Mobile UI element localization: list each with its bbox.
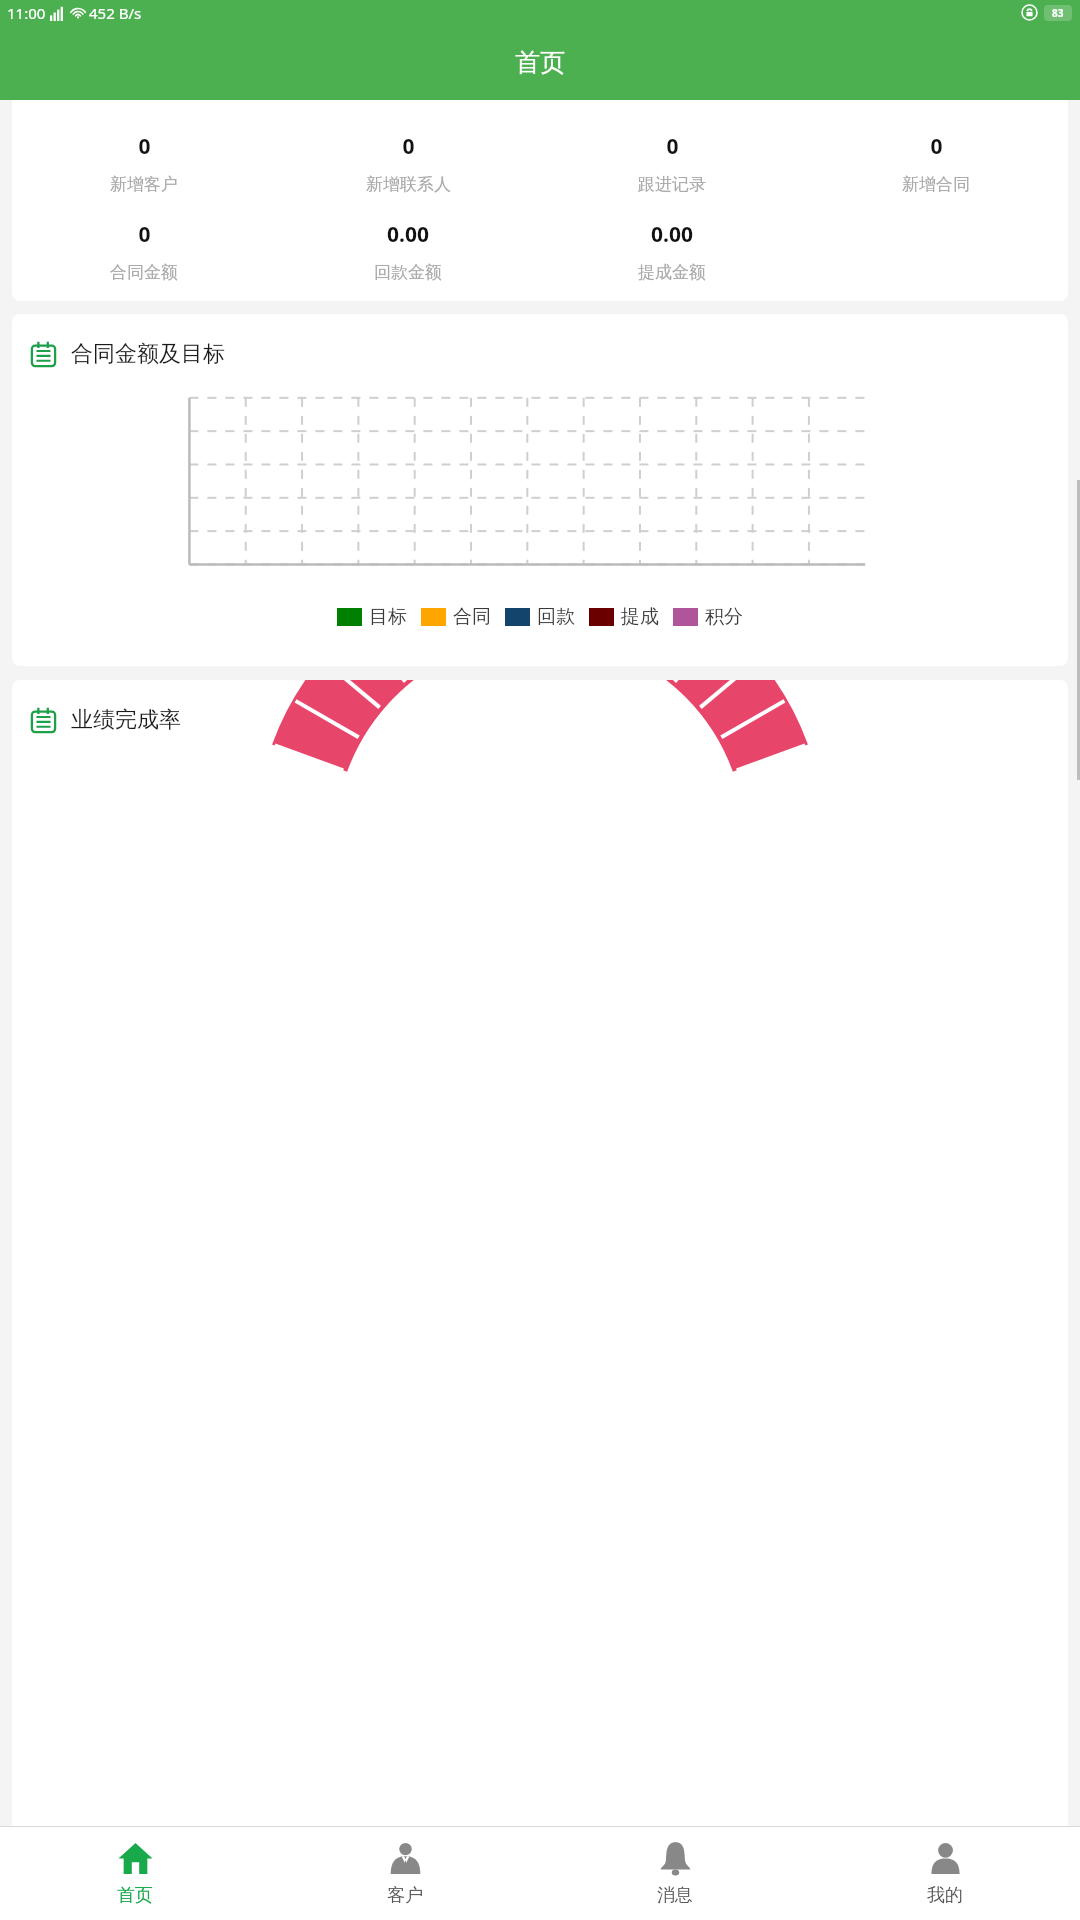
staticText: 新增联系人 xyxy=(366,174,451,195)
staticText: 提成 xyxy=(621,605,659,629)
button[interactable]: 0 xyxy=(804,132,1068,195)
button[interactable]: 客户 xyxy=(270,1827,540,1920)
staticText: 合同金额 xyxy=(110,262,178,283)
staticText: 83 xyxy=(1052,6,1064,20)
staticText: 回款金额 xyxy=(374,262,442,283)
staticText: 跟进记录 xyxy=(638,174,706,195)
staticText: 回款 xyxy=(537,605,575,629)
staticText: 0 xyxy=(138,132,151,161)
staticText: 0.00 xyxy=(387,220,429,249)
button[interactable]: 首页 xyxy=(0,1827,270,1920)
other: Report xyxy=(30,707,57,734)
staticText: 0.00 xyxy=(651,220,693,249)
staticText: 首页 xyxy=(117,1884,153,1907)
button[interactable]: 消息 xyxy=(540,1827,810,1920)
button[interactable]: 0 xyxy=(12,132,276,195)
staticText: 新增客户 xyxy=(110,174,178,195)
staticText: 0 xyxy=(138,220,151,249)
staticText: 0 xyxy=(930,132,943,161)
button[interactable]: 0.00 xyxy=(276,220,540,283)
button[interactable]: 0 xyxy=(12,220,276,283)
button[interactable]: 0 xyxy=(540,132,804,195)
staticText: 0 xyxy=(402,132,415,161)
staticText: 客户 xyxy=(387,1884,423,1907)
staticText: 合同 xyxy=(453,605,491,629)
staticText: 消息 xyxy=(657,1884,693,1907)
staticText: 0 xyxy=(666,132,679,161)
staticText: 452 B/s xyxy=(89,3,142,23)
staticText: 首页 xyxy=(515,47,565,78)
staticText: 我的 xyxy=(927,1884,963,1907)
button[interactable]: 0.00 xyxy=(540,220,804,283)
staticText: 合同金额及目标 xyxy=(71,340,225,368)
button[interactable]: 0 xyxy=(12,100,1068,301)
staticText: 业绩完成率 xyxy=(71,706,181,734)
staticText: 积分 xyxy=(705,605,743,629)
button[interactable]: 我的 xyxy=(810,1827,1080,1920)
staticText: 目标 xyxy=(369,605,407,629)
button[interactable]: Report xyxy=(12,680,1068,1826)
staticText: 提成金额 xyxy=(638,262,706,283)
staticText: 11:00 xyxy=(7,3,46,23)
button[interactable]: 0 xyxy=(276,132,540,195)
staticText: 新增合同 xyxy=(902,174,970,195)
other: Report xyxy=(30,341,57,368)
button[interactable]: Report xyxy=(12,314,1068,666)
